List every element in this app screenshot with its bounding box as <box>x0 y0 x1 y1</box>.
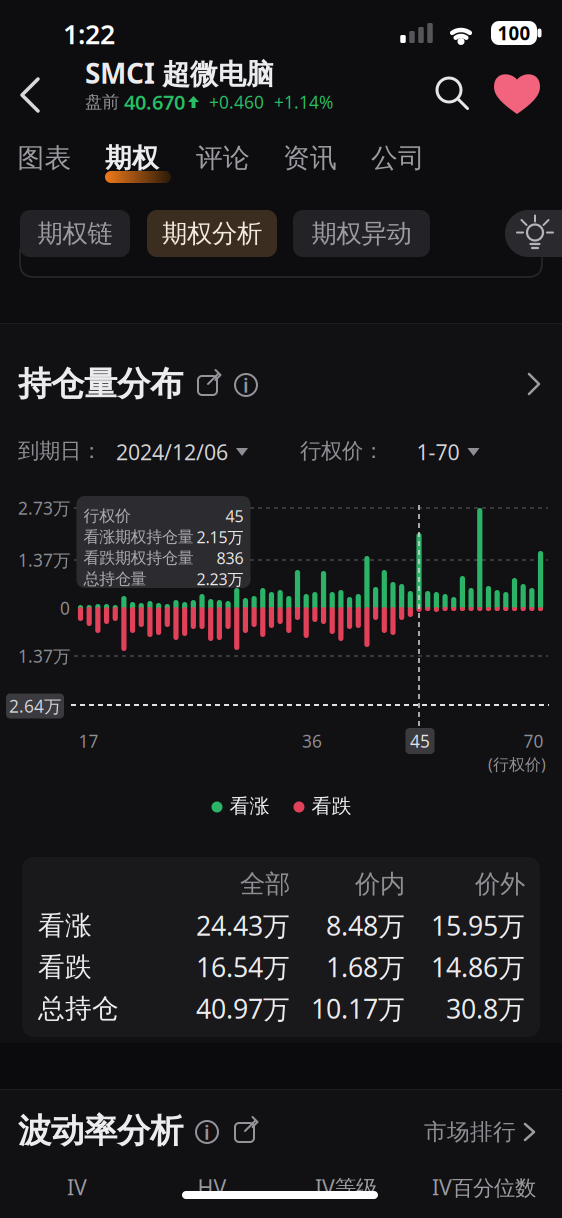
staticText: 14.86万 <box>431 949 525 985</box>
staticText: 45 <box>410 729 430 752</box>
staticText: +0.460 +1.14% <box>199 90 333 113</box>
button[interactable]: 评论 <box>190 136 256 180</box>
staticText: 2024/12/06 <box>116 438 228 466</box>
staticText: 40.97万 <box>196 991 290 1026</box>
staticText: 资讯 <box>283 142 337 174</box>
staticText: i <box>204 1119 210 1145</box>
staticText: 30.8万 <box>446 991 525 1026</box>
staticText: 10.17万 <box>311 991 405 1026</box>
staticText: (行权价) <box>488 753 546 775</box>
button[interactable]: Info <box>234 373 258 397</box>
staticText: 行权价： <box>300 438 384 464</box>
staticText: 持仓量分布 <box>18 363 183 404</box>
staticText: 70 <box>523 729 543 752</box>
staticText: 期权链 <box>37 218 112 249</box>
button[interactable]: Favorite <box>490 70 544 118</box>
staticText: 15.95万 <box>431 908 525 943</box>
staticText: 市场排行 <box>424 1118 516 1146</box>
button[interactable]: 资讯 <box>277 136 343 180</box>
staticText: 期权分析 <box>162 218 262 249</box>
staticText: 1.68万 <box>326 949 405 985</box>
staticText: 17 <box>78 729 98 752</box>
staticText: 40.670 <box>124 89 185 115</box>
button[interactable]: 公司 <box>365 136 431 180</box>
staticText: 0 <box>60 596 70 619</box>
button[interactable]: 图表 <box>11 136 77 180</box>
staticText: 2.64万 <box>9 694 61 717</box>
button[interactable]: Share <box>234 1119 258 1143</box>
staticText: IV百分位数 <box>432 1173 536 1201</box>
staticText: 总持仓量 <box>83 569 147 589</box>
staticText: 836 <box>216 547 243 569</box>
button[interactable]: Info <box>195 1120 219 1144</box>
button[interactable]: IV百分位数 <box>426 1167 542 1207</box>
button[interactable]: IV等级 <box>309 1167 383 1207</box>
button[interactable]: More <box>521 366 547 402</box>
staticText: 看涨期权持仓量 <box>83 527 194 547</box>
staticText: 36 <box>302 729 322 752</box>
staticText: i <box>243 372 249 398</box>
button[interactable]: 2024/12/06 <box>112 434 252 470</box>
staticText: 盘前 <box>85 91 124 113</box>
staticText: 看跌 <box>311 794 351 818</box>
staticText: 公司 <box>371 142 425 174</box>
staticText: 2.23万 <box>196 568 243 590</box>
staticText: 1:22 <box>63 16 115 52</box>
button[interactable]: 1-70 <box>412 434 483 470</box>
staticText: 看涨 <box>229 794 269 818</box>
button[interactable]: 期权异动 <box>293 210 430 257</box>
button[interactable]: 期权链 <box>20 210 130 257</box>
button[interactable]: 期权 <box>99 136 165 180</box>
staticText: 波动率分析 <box>18 1110 183 1151</box>
staticText: 1-70 <box>416 438 459 466</box>
button[interactable]: Search <box>432 74 472 114</box>
staticText: 期权 <box>105 142 159 174</box>
staticText: 评论 <box>196 142 250 174</box>
button[interactable]: Tips <box>505 210 562 257</box>
staticText: 总持仓 <box>38 992 119 1025</box>
staticText: IV <box>67 1173 87 1201</box>
staticText: 2.15万 <box>196 526 243 548</box>
staticText: IV等级 <box>315 1173 377 1201</box>
staticText: 100 <box>497 21 530 45</box>
staticText: 价内 <box>355 868 405 899</box>
button[interactable]: IV <box>61 1167 93 1207</box>
staticText: HV <box>197 1173 226 1201</box>
staticText: 24.43万 <box>196 908 290 943</box>
staticText: 到期日： <box>18 438 102 464</box>
staticText: 全部 <box>240 868 290 899</box>
button[interactable]: HV <box>191 1167 232 1207</box>
staticText: 价外 <box>475 868 525 899</box>
staticText: 看涨 <box>38 909 92 942</box>
button[interactable]: 市场排行 <box>420 1114 538 1150</box>
button[interactable]: Back <box>10 67 50 123</box>
staticText: 1.37万 <box>18 644 70 667</box>
staticText: 期权异动 <box>311 218 411 249</box>
staticText: 8.48万 <box>326 908 405 943</box>
staticText: 图表 <box>17 142 71 174</box>
staticText: 45 <box>225 505 243 527</box>
button[interactable]: 期权分析 <box>147 210 277 257</box>
staticText: 看跌 <box>38 951 92 983</box>
staticText: 2.73万 <box>18 496 70 519</box>
staticText: 行权价 <box>83 506 131 526</box>
staticText: SMCI 超微电脑 <box>85 54 274 92</box>
staticText: 16.54万 <box>196 949 290 985</box>
staticText: 看跌期权持仓量 <box>83 548 194 568</box>
button[interactable]: Share <box>197 372 221 396</box>
staticText: 1.37万 <box>18 548 70 571</box>
